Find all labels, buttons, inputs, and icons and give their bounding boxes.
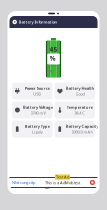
button[interactable]: Battery Health [54,82,95,99]
staticText: 5000.0 mAh [71,129,92,134]
button[interactable]: Nhà cung cấp [12,180,35,185]
staticText: 45% [49,45,57,62]
staticText: Li-poly [32,129,43,134]
staticText: Test Ad [56,174,69,180]
button[interactable]: Back [12,20,17,24]
staticText: Battery Information [18,19,57,25]
button[interactable]: Power Source [12,82,52,99]
button[interactable]: Temperature [54,101,95,118]
staticText: Nhà cung cấp [12,180,35,185]
staticText: Temperature [67,104,93,110]
button[interactable]: Battery Capacity [54,120,95,137]
staticText: Battery Capacity [65,123,98,129]
staticText: Battery Voltage [23,104,53,110]
staticText: Good [75,91,84,96]
staticText: 3740 mV [30,110,45,115]
staticText: Power Source [25,85,50,91]
staticText: Charging [47,62,59,73]
staticText: Battery Health [65,85,94,91]
staticText: This is a AdMob test ad. [45,180,80,191]
staticText: 38.4 C [74,110,85,115]
button[interactable]: Battery Voltage [12,101,52,118]
staticText: USB [33,91,41,96]
button[interactable]: Battery Type [12,120,52,137]
staticText: Battery Type [25,123,50,129]
